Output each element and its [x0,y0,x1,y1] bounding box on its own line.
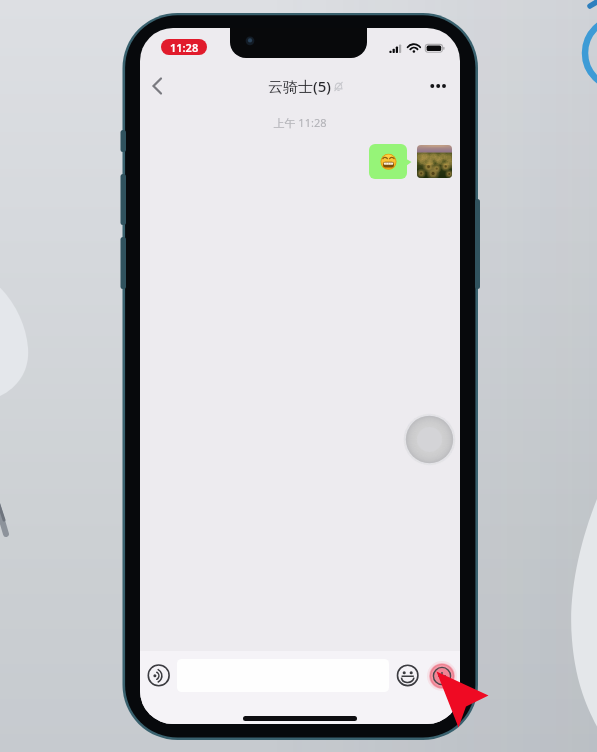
button[interactable] [369,144,407,179]
staticText: 上午 11:28 [140,115,460,130]
button[interactable]: Back [145,70,177,102]
staticText: 云骑士(5) [268,76,331,96]
button[interactable]: Add [427,661,457,691]
button[interactable]: Assistive touch [405,415,454,464]
button[interactable]: Emoji [396,664,419,687]
button[interactable]: Photo [417,145,452,178]
button[interactable]: Voice input [147,664,170,687]
staticText: 11:28 [170,40,199,55]
button[interactable]: More options [422,70,454,102]
